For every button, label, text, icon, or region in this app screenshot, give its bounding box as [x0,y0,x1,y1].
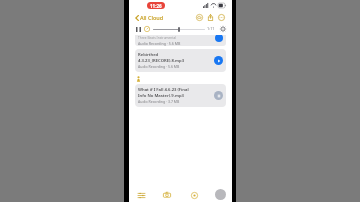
button[interactable]: Share [205,12,216,23]
button[interactable]: Settings [218,24,227,33]
button[interactable]: Record [188,189,200,201]
button[interactable]: Play [214,56,223,65]
button[interactable]: Pause [214,91,223,100]
staticText: Audio Recording · 3.7 MB [138,99,180,104]
staticText: Audio Recording · 5.6 MB [138,64,180,69]
staticText: All Cloud [140,14,164,21]
button[interactable]: All Cloud [134,12,165,23]
button[interactable]: Rebirthed 4.3.23_(RECORE).8.mp3 [135,49,226,72]
button[interactable]: Camera [161,189,173,201]
button[interactable]: Cloud [194,12,205,23]
staticText: Audio Recording · 5.6 MB [138,41,181,46]
button[interactable]: Playback speed [142,24,151,33]
staticText: Rebirthed 4.3.23_(RECORE).8.mp3 [138,52,185,63]
button[interactable]: Play [215,35,223,42]
staticText: Three Beats Instrumental [138,36,177,40]
staticText: 11:26 [150,3,162,9]
button[interactable]: Profile [215,189,226,200]
button[interactable]: What if I Fall 4.6.23 (Final Info No Mas… [135,84,226,107]
button[interactable]: Filter [135,189,147,201]
staticText: 1:11 [207,26,215,31]
button[interactable]: More [216,12,227,23]
button[interactable]: Three Beats Instrumental [135,35,226,46]
button[interactable]: Pause [134,25,142,33]
staticText: What if I Fall 4.6.23 (Final Info No Mas… [138,87,189,98]
